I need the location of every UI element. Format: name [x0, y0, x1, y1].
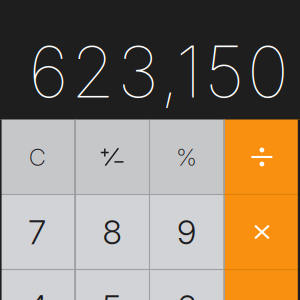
staticText: 5 — [102, 287, 121, 300]
staticText: 8 — [102, 212, 121, 252]
staticText: 6 — [177, 287, 196, 300]
staticText: % — [176, 142, 197, 171]
staticText: 4 — [27, 287, 47, 300]
button[interactable]: Subtract — [224, 269, 300, 300]
button[interactable]: C — [0, 119, 75, 194]
staticText: 9 — [177, 212, 196, 252]
button[interactable]: 6 — [149, 269, 224, 300]
button[interactable]: 5 — [75, 269, 149, 300]
staticText: 7 — [28, 212, 46, 252]
button[interactable]: % — [149, 119, 224, 194]
button[interactable]: 8 — [75, 194, 149, 269]
button[interactable]: Plus or minus — [75, 119, 149, 194]
button[interactable]: Multiply — [224, 194, 300, 269]
button[interactable]: 7 — [0, 194, 75, 269]
button[interactable]: 9 — [149, 194, 224, 269]
staticText: 623,150 — [28, 29, 289, 114]
button[interactable]: Divide — [224, 119, 300, 194]
staticText: C — [29, 142, 46, 171]
button[interactable]: 4 — [0, 269, 75, 300]
